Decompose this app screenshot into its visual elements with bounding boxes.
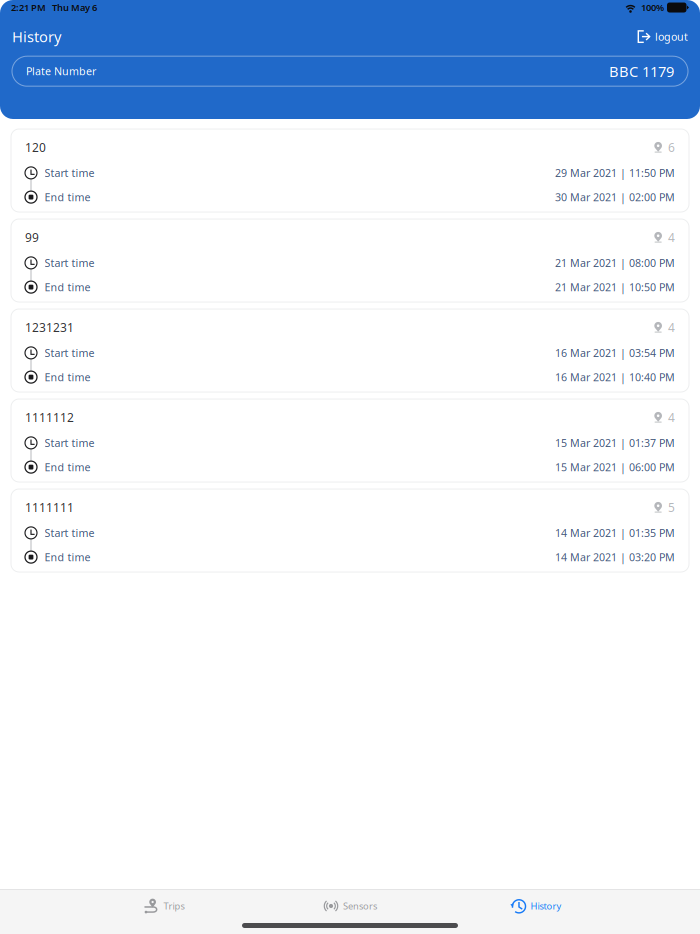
- staticText: 100%: [641, 1, 664, 14]
- button[interactable]: Trips: [71, 898, 257, 914]
- button[interactable]: Sensors: [257, 898, 443, 914]
- staticText: 21 Mar 2021 | 08:00 PM: [555, 256, 675, 270]
- staticText: 5: [668, 499, 675, 515]
- button[interactable]: 1111112: [11, 399, 689, 482]
- staticText: End time: [44, 190, 90, 204]
- staticText: 16 Mar 2021 | 10:40 PM: [555, 370, 675, 384]
- button[interactable]: 1111111: [11, 489, 689, 572]
- staticText: 4: [668, 319, 675, 335]
- button[interactable]: 99: [11, 219, 689, 302]
- staticText: 120: [25, 139, 46, 155]
- button[interactable]: 120: [11, 129, 689, 212]
- staticText: Thu May 6: [52, 1, 97, 14]
- staticText: End time: [44, 460, 90, 474]
- staticText: History: [530, 900, 561, 912]
- staticText: 2:21 PM: [11, 1, 46, 14]
- button[interactable]: 1231231: [11, 309, 689, 392]
- staticText: Start time: [44, 526, 94, 540]
- staticText: 15 Mar 2021 | 06:00 PM: [555, 460, 675, 474]
- staticText: 16 Mar 2021 | 03:54 PM: [555, 346, 675, 360]
- staticText: 4: [668, 229, 675, 245]
- staticText: Start time: [44, 166, 94, 180]
- staticText: 21 Mar 2021 | 10:50 PM: [555, 280, 675, 294]
- staticText: BBC 1179: [609, 61, 674, 81]
- staticText: 1111112: [25, 409, 74, 425]
- staticText: 15 Mar 2021 | 01:37 PM: [555, 436, 675, 450]
- staticText: Trips: [163, 900, 184, 912]
- staticText: End time: [44, 370, 90, 384]
- staticText: 14 Mar 2021 | 01:35 PM: [555, 526, 675, 540]
- staticText: 6: [668, 139, 675, 155]
- staticText: logout: [655, 29, 688, 44]
- staticText: 14 Mar 2021 | 03:20 PM: [555, 550, 675, 564]
- staticText: History: [12, 27, 61, 46]
- staticText: End time: [44, 280, 90, 294]
- staticText: 29 Mar 2021 | 11:50 PM: [555, 166, 675, 180]
- staticText: Plate Number: [26, 64, 96, 78]
- button[interactable]: logout: [637, 27, 688, 46]
- staticText: Start time: [44, 346, 94, 360]
- staticText: Start time: [44, 256, 94, 270]
- staticText: 1231231: [25, 319, 74, 335]
- staticText: Start time: [44, 436, 94, 450]
- button[interactable]: History: [443, 898, 629, 914]
- staticText: 99: [25, 229, 39, 245]
- staticText: 1111111: [25, 499, 74, 515]
- staticText: End time: [44, 550, 90, 564]
- staticText: Sensors: [343, 900, 377, 912]
- staticText: 30 Mar 2021 | 02:00 PM: [555, 190, 675, 204]
- staticText: 4: [668, 409, 675, 425]
